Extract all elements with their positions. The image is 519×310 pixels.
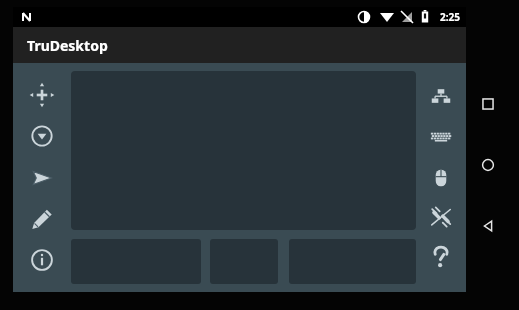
button[interactable]: Draw <box>27 204 57 234</box>
button[interactable]: Mouse <box>426 163 456 193</box>
button[interactable]: Info <box>27 245 57 275</box>
staticText: 2:25 <box>440 10 460 24</box>
button[interactable]: Recents <box>471 87 505 121</box>
button[interactable]: Home <box>471 148 505 182</box>
button[interactable]: TruDesktop <box>13 27 466 63</box>
button[interactable]: Keyboard <box>426 123 456 153</box>
button[interactable]: Back <box>471 209 505 243</box>
button[interactable]: Send <box>27 163 57 193</box>
button[interactable]: Layout <box>426 83 456 113</box>
button[interactable]: Help <box>426 242 456 272</box>
button[interactable]: Move <box>27 80 57 110</box>
button[interactable]: Disconnect <box>426 202 456 232</box>
button[interactable]: Scroll down <box>27 121 57 151</box>
staticText: TruDesktop <box>27 36 108 55</box>
